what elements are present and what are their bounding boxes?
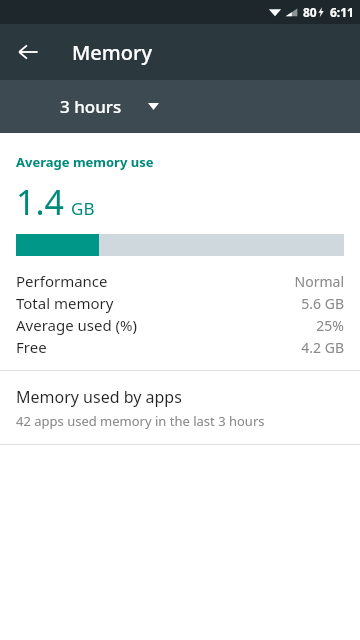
staticText: Free <box>16 337 47 357</box>
staticText: 4.2 GB <box>301 338 344 357</box>
staticText: Memory <box>72 39 153 66</box>
staticText: Performance <box>16 271 108 291</box>
button[interactable]: Memory used by apps <box>0 371 360 444</box>
staticText: 6:11 <box>330 4 354 20</box>
button[interactable]: Back <box>4 28 52 76</box>
staticText: 25% <box>316 316 344 335</box>
staticText: 5.6 GB <box>301 294 344 313</box>
staticText: GB <box>71 197 95 220</box>
button[interactable]: 3 hours <box>60 95 159 118</box>
staticText: Total memory <box>16 293 114 313</box>
staticText: 1.4 <box>16 179 65 225</box>
staticText: 80 <box>303 4 317 20</box>
staticText: 42 apps used memory in the last 3 hours <box>16 412 265 430</box>
staticText: Average used (%) <box>16 315 138 335</box>
staticText: 3 hours <box>60 95 122 118</box>
staticText: Average memory use <box>16 153 154 171</box>
staticText: Memory used by apps <box>16 386 182 408</box>
staticText: Normal <box>294 272 344 291</box>
